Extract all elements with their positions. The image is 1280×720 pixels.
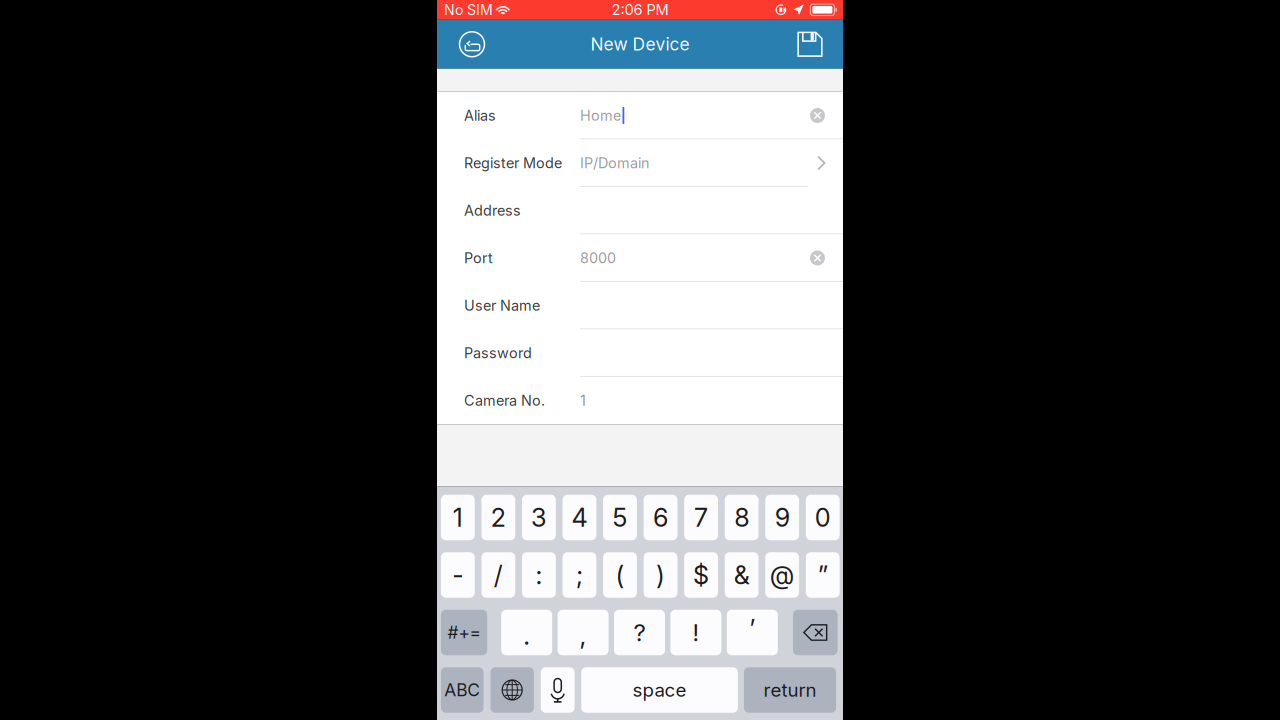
staticText: ) (656, 560, 665, 590)
staticText: #+= (447, 622, 480, 643)
button[interactable]: @ (765, 552, 799, 598)
staticText: 0 (815, 502, 831, 533)
button[interactable]: Save (787, 20, 833, 68)
staticText: IP/Domain (580, 154, 650, 172)
staticText: ” (818, 560, 828, 590)
button[interactable]: / (481, 552, 515, 598)
button[interactable]: Next keyboard (490, 667, 534, 713)
button[interactable]: 5 (603, 495, 637, 540)
staticText: ABC (444, 679, 480, 700)
button[interactable]: 2 (481, 495, 515, 540)
button[interactable]: $ (684, 552, 718, 598)
button[interactable]: ABC (441, 667, 483, 713)
staticText: 1 (580, 392, 586, 409)
staticText: return (763, 679, 816, 701)
button[interactable]: : (522, 552, 556, 598)
button[interactable]: 8 (725, 495, 759, 540)
staticText: 2 (491, 502, 506, 533)
staticText: : (535, 560, 542, 590)
button[interactable]: space (581, 667, 738, 713)
staticText: 9 (775, 502, 790, 533)
staticText: Password (464, 344, 532, 362)
button[interactable]: , (558, 610, 609, 655)
staticText: New Device (590, 34, 689, 55)
staticText: . (523, 620, 530, 651)
staticText: 4 (571, 502, 587, 533)
staticText: 6 (653, 502, 668, 533)
button[interactable]: Back (449, 20, 495, 68)
staticText: ( (615, 560, 624, 590)
staticText: ’ (749, 613, 755, 644)
button[interactable]: 9 (765, 495, 799, 540)
button[interactable]: ! (670, 610, 721, 655)
button[interactable]: ” (806, 552, 840, 598)
button[interactable]: ) (644, 552, 677, 598)
staticText: - (452, 560, 463, 590)
staticText: ? (633, 618, 645, 647)
button[interactable]: 3 (522, 495, 556, 540)
staticText: Port (464, 249, 493, 267)
staticText: & (734, 560, 750, 590)
staticText: / (494, 560, 503, 590)
staticText: ! (692, 618, 699, 647)
staticText: 1 (453, 502, 463, 533)
staticText: 5 (612, 502, 627, 533)
button[interactable]: ’ (727, 610, 778, 655)
staticText: ; (576, 560, 583, 590)
button[interactable]: #+= (441, 610, 487, 655)
staticText: 3 (531, 502, 547, 533)
staticText: Home (580, 107, 621, 124)
staticText: 2:06 PM (611, 1, 668, 19)
staticText: 8 (734, 502, 749, 533)
staticText: User Name (464, 297, 540, 314)
button[interactable]: & (725, 552, 759, 598)
staticText: @ (770, 560, 795, 590)
staticText: No SIM (444, 1, 493, 18)
button[interactable]: 4 (562, 495, 596, 540)
button[interactable]: ( (603, 552, 637, 598)
button[interactable]: 1 (441, 495, 475, 540)
button[interactable]: ; (562, 552, 596, 598)
button[interactable]: . (501, 610, 552, 655)
staticText: Camera No. (464, 392, 545, 409)
staticText: 7 (694, 502, 708, 533)
button[interactable]: - (441, 552, 475, 598)
button[interactable]: Delete (793, 610, 838, 655)
button[interactable]: return (744, 667, 836, 713)
button[interactable]: ? (614, 610, 665, 655)
staticText: Address (464, 202, 521, 219)
button[interactable]: 7 (684, 495, 718, 540)
staticText: , (580, 620, 587, 651)
button[interactable]: Dictate (541, 667, 575, 713)
staticText: Register Mode (464, 154, 562, 172)
staticText: $ (693, 560, 709, 590)
button[interactable]: 6 (644, 495, 677, 540)
staticText: Alias (464, 107, 496, 124)
button[interactable]: 0 (806, 495, 840, 540)
staticText: 8000 (580, 249, 616, 267)
staticText: space (633, 679, 687, 701)
